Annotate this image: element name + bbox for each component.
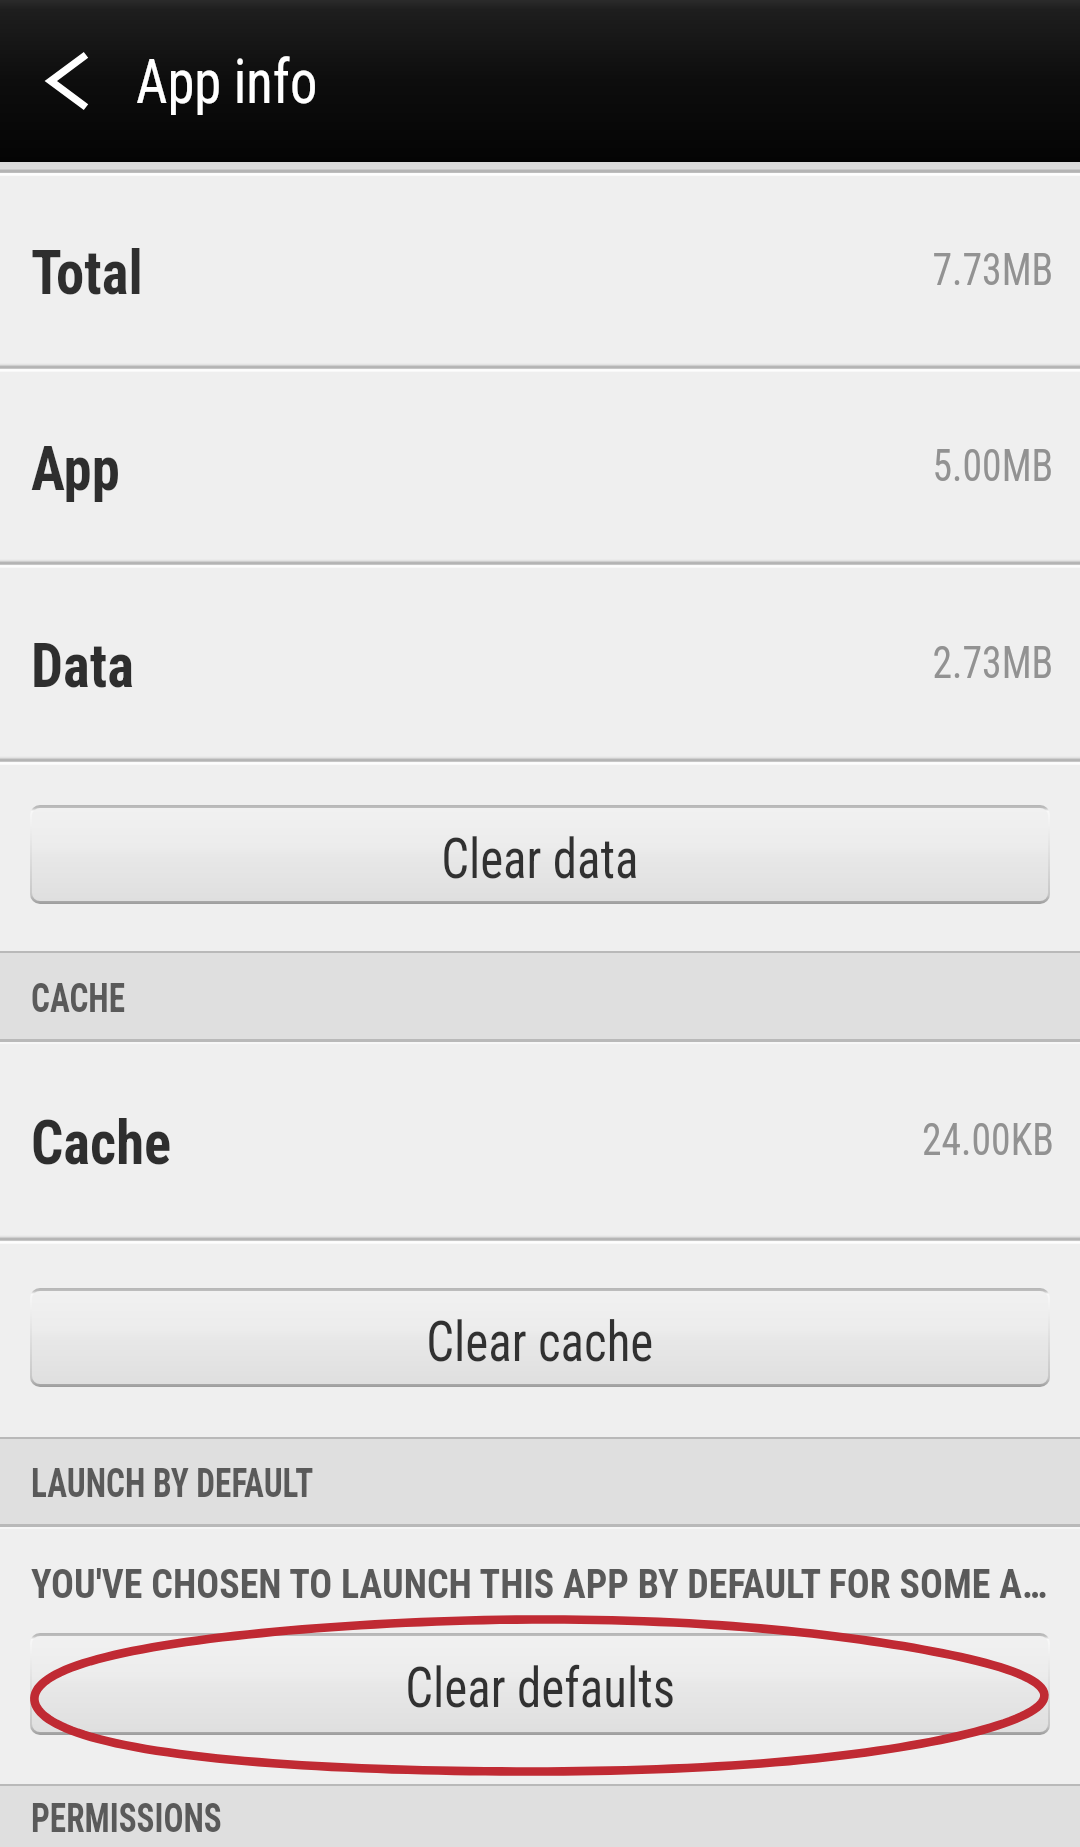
button[interactable]: Clear data	[32, 808, 1048, 901]
staticText: App	[31, 432, 120, 505]
staticText: 2.73MB	[933, 636, 1054, 689]
staticText: LAUNCH BY DEFAULT	[31, 1460, 313, 1507]
staticText: Cache	[31, 1106, 172, 1179]
staticText: 24.00KB	[922, 1113, 1054, 1166]
button[interactable]: Data	[0, 568, 1080, 756]
staticText: 5.00MB	[933, 439, 1054, 492]
button[interactable]: Navigate back	[0, 0, 136, 162]
staticText: Clear cache	[426, 1309, 654, 1375]
staticText: Total	[31, 236, 143, 309]
button[interactable]: Total	[0, 176, 1080, 363]
staticText: Data	[31, 629, 134, 702]
staticText: Clear data	[441, 826, 639, 892]
button[interactable]: Clear cache	[32, 1291, 1048, 1384]
button[interactable]: Cache	[0, 1044, 1080, 1235]
staticText: Clear defaults	[405, 1655, 676, 1721]
button[interactable]: Clear defaults	[32, 1636, 1048, 1732]
staticText: 7.73MB	[933, 243, 1054, 296]
staticText: App info	[136, 45, 318, 118]
staticText: YOU'VE CHOSEN TO LAUNCH THIS APP BY DEFA…	[31, 1560, 1055, 1608]
staticText: PERMISSIONS	[31, 1795, 222, 1842]
staticText: CACHE	[31, 975, 126, 1022]
button[interactable]: App	[0, 372, 1080, 559]
